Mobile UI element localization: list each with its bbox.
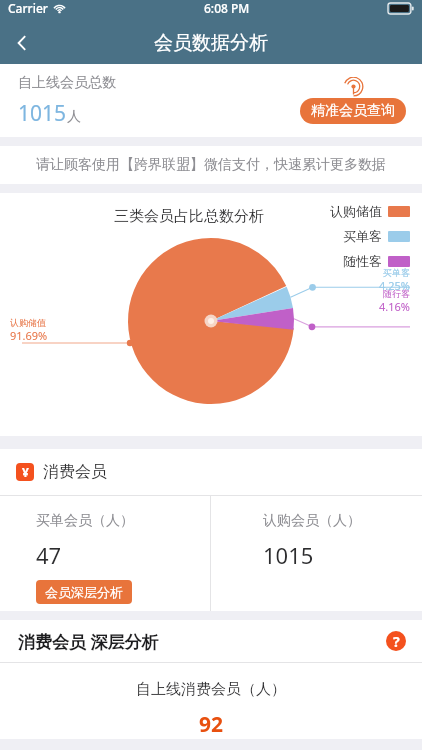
staticText: 认购储值: [10, 317, 46, 328]
staticText: 91.69%: [10, 328, 48, 343]
staticText: 请让顾客使用【跨界联盟】微信支付，快速累计更多数据: [36, 156, 386, 174]
staticText: ?: [393, 632, 400, 651]
staticText: 买单会员（人）: [36, 512, 134, 530]
staticText: 自上线会员总数: [18, 74, 116, 92]
staticText: 消费会员 深层分析: [18, 630, 159, 653]
staticText: 6:08 PM: [204, 0, 250, 16]
staticText: 认购会员（人）: [263, 512, 361, 530]
staticText: 1015: [263, 540, 314, 570]
staticText: 买单客: [383, 267, 410, 278]
staticText: 随行客: [383, 288, 410, 299]
button[interactable]: Back: [0, 22, 44, 64]
staticText: 认购储值: [330, 203, 382, 219]
staticText: 92: [199, 710, 224, 739]
button[interactable]: 会员深层分析: [36, 580, 132, 604]
staticText: 会员数据分析: [154, 31, 268, 55]
staticText: 4.16%: [379, 299, 410, 314]
staticText: 人: [67, 108, 81, 126]
staticText: 1015: [18, 99, 67, 128]
button[interactable]: 精准会员查询: [300, 77, 406, 124]
staticText: 买单客: [343, 228, 382, 244]
staticText: 精准会员查询: [311, 102, 395, 120]
staticText: 4.25%: [379, 278, 410, 293]
staticText: 会员深层分析: [45, 584, 123, 600]
staticText: Carrier: [8, 0, 48, 16]
button[interactable]: 买单会员（人）: [0, 496, 210, 611]
staticText: 三类会员占比总数分析: [114, 207, 264, 226]
staticText: 47: [36, 540, 62, 570]
button[interactable]: 认购会员（人）: [211, 496, 422, 611]
staticText: 消费会员: [43, 462, 107, 482]
staticText: 自上线消费会员（人）: [136, 680, 286, 699]
staticText: ¥: [22, 464, 29, 480]
staticText: 随性客: [343, 253, 382, 269]
button[interactable]: Help: [386, 631, 406, 651]
